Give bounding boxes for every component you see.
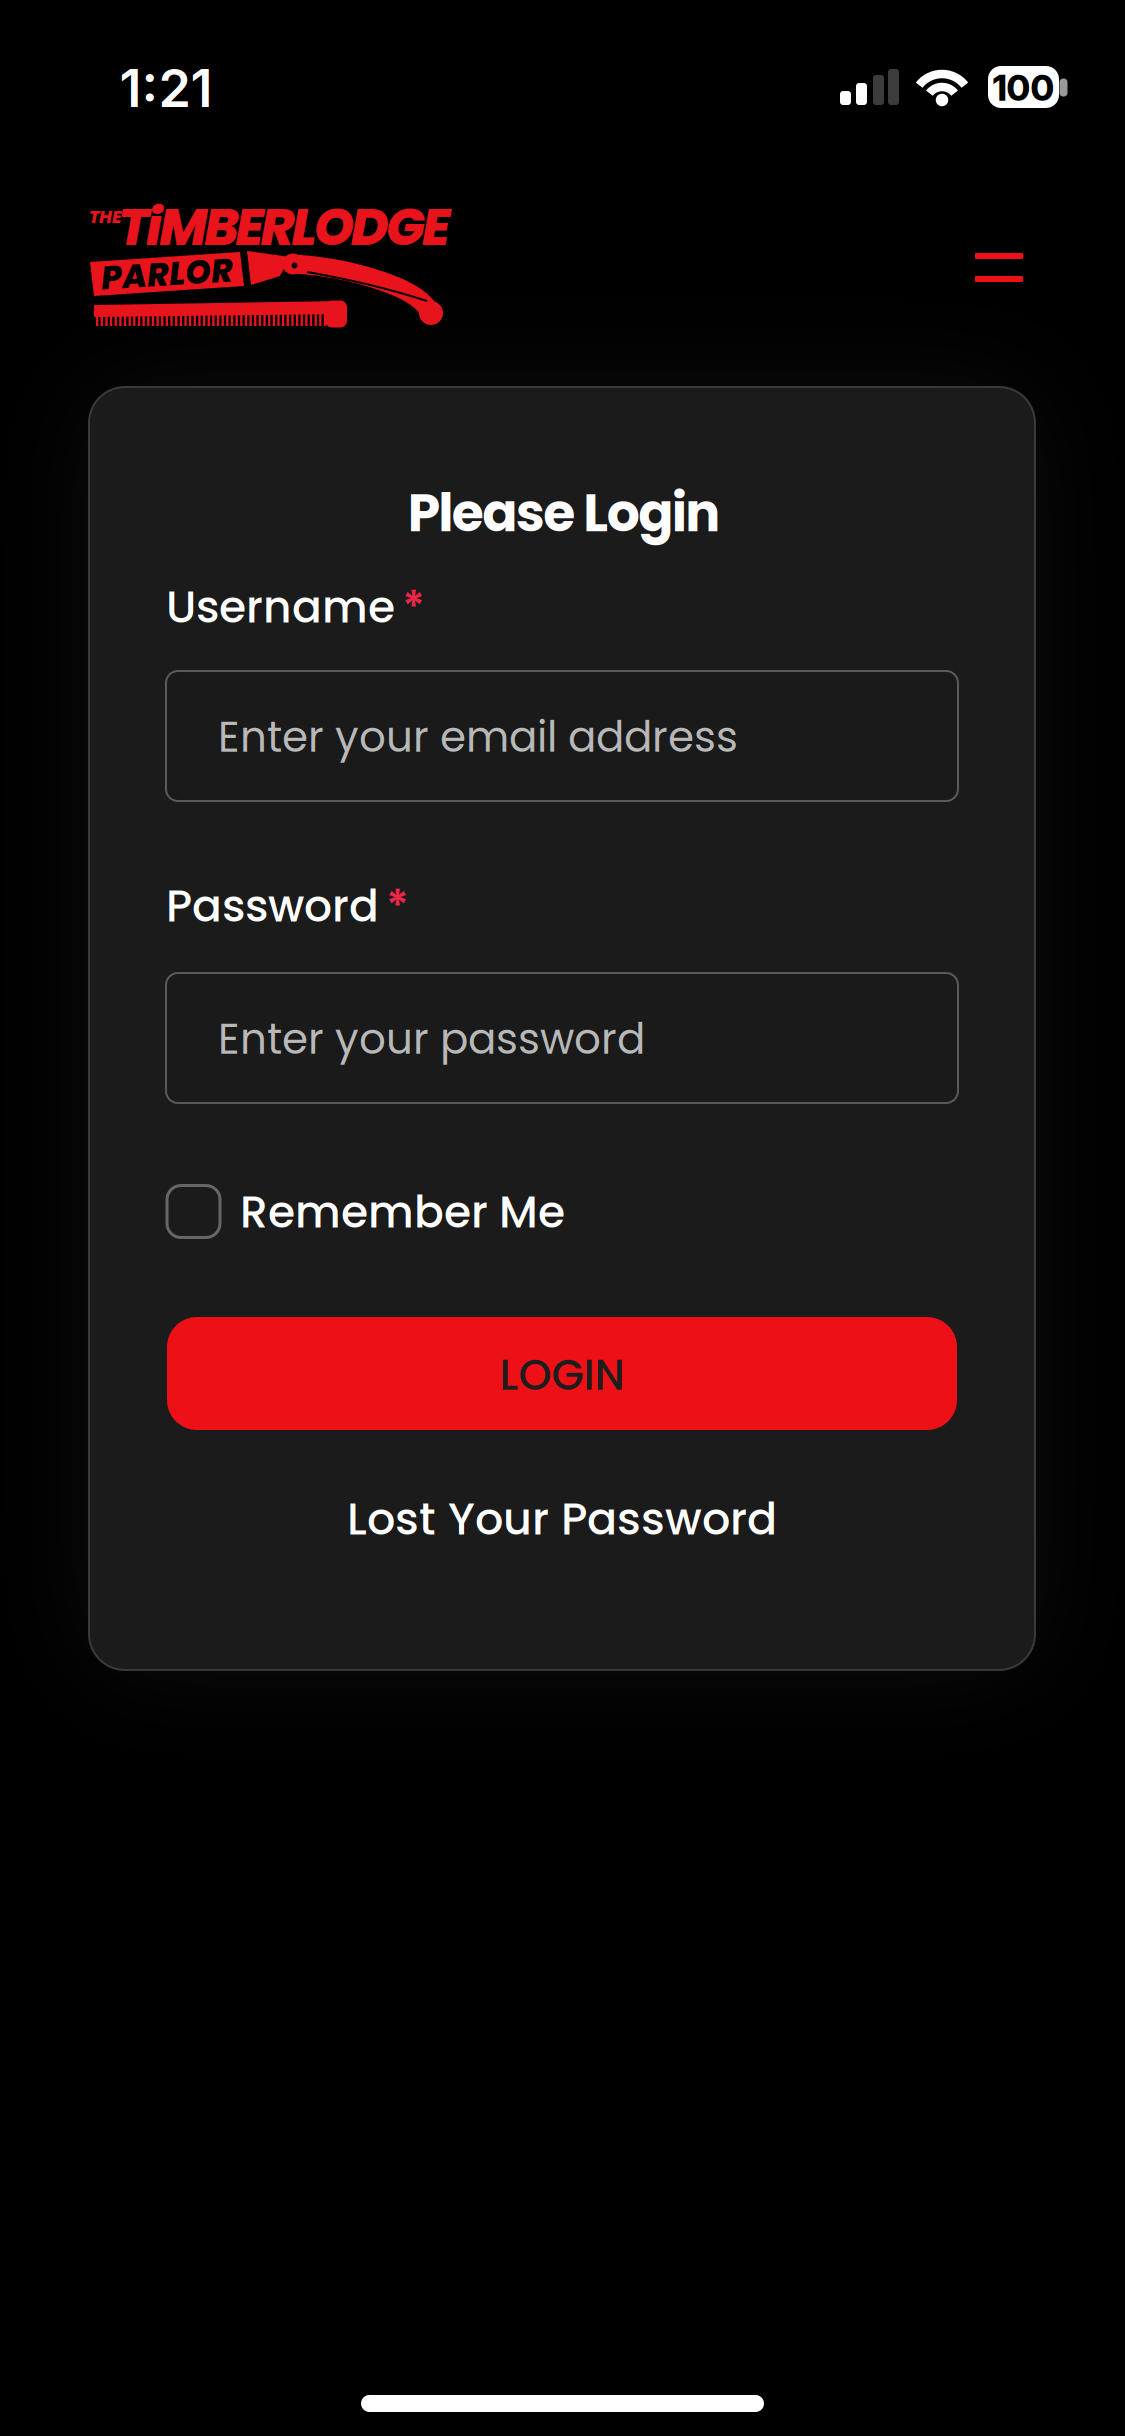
staticText: 1:21 [119,56,212,119]
staticText: Please Login [408,477,720,549]
staticText: Username [166,576,395,638]
staticText: * [386,875,409,937]
staticText: Password [166,875,379,937]
staticText: * [402,576,425,638]
staticText: Enter your email address [218,708,738,766]
staticText: Lost Your Password [347,1488,777,1550]
staticText: 100 [992,67,1054,109]
staticText: Enter your password [218,1010,645,1068]
staticText: Remember Me [240,1181,565,1243]
staticText: PARLOR [101,251,233,297]
staticText: LOGIN [499,1346,624,1404]
staticText: THE [89,205,121,229]
staticText: TiMBERLODGE [118,191,450,263]
